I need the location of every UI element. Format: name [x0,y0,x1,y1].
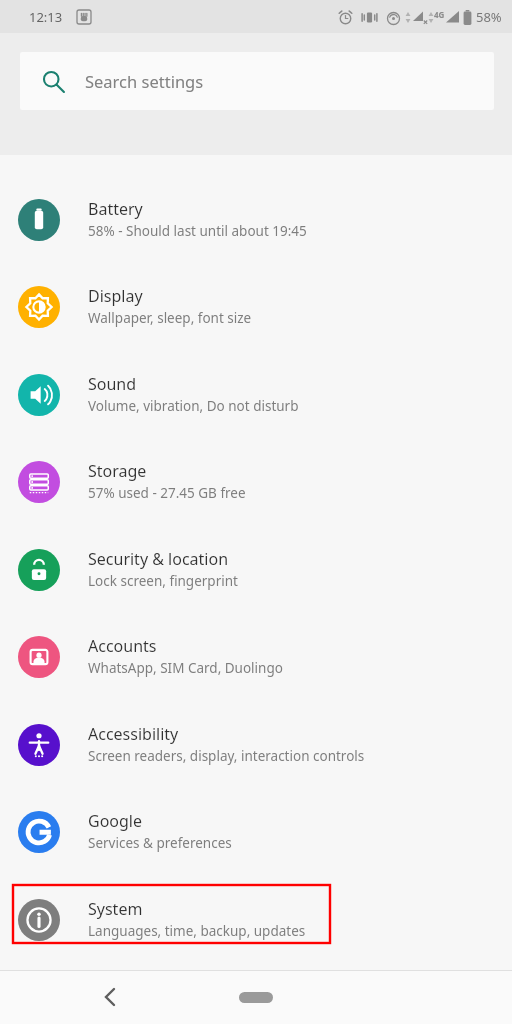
staticText: Google [88,810,143,832]
button[interactable]: Display [0,263,512,351]
staticText: 58% [476,8,502,26]
staticText: Storage [88,460,147,482]
button[interactable]: Back [86,973,134,1021]
staticText: Security & location [88,548,229,570]
staticText: 4G [434,9,445,20]
staticText: Services & preferences [88,834,232,852]
button[interactable]: Home [228,979,284,1015]
staticText: Display [88,285,143,307]
staticText: Screen readers, display, interaction con… [88,747,365,765]
button[interactable]: Accessibility [0,701,512,789]
button[interactable]: Apps & notifications [0,122,512,176]
staticText: 12:13 [29,8,63,26]
staticText: System [88,898,143,920]
button[interactable]: Accounts [0,613,512,701]
button[interactable]: Battery [0,176,512,264]
button[interactable]: System [0,876,512,964]
button[interactable]: Security & location [0,526,512,614]
staticText: Languages, time, backup, updates [88,922,306,940]
staticText: Accessibility [88,723,179,745]
staticText: WhatsApp, SIM Card, Duolingo [88,659,283,677]
staticText: Lock screen, fingerprint [88,572,238,590]
staticText: Accounts [88,635,157,657]
staticText: Sound [88,373,137,395]
staticText: Search settings [85,70,204,92]
staticText: Volume, vibration, Do not disturb [88,397,299,415]
staticText: Wallpaper, sleep, font size [88,309,252,327]
staticText: Battery [88,198,143,220]
button[interactable]: Sound [0,351,512,439]
button[interactable]: Storage [0,438,512,526]
button[interactable]: Search settings [20,52,494,110]
button[interactable]: Google [0,788,512,876]
staticText: 58% - Should last until about 19:45 [88,222,307,240]
staticText: 57% used - 27.45 GB free [88,484,246,502]
